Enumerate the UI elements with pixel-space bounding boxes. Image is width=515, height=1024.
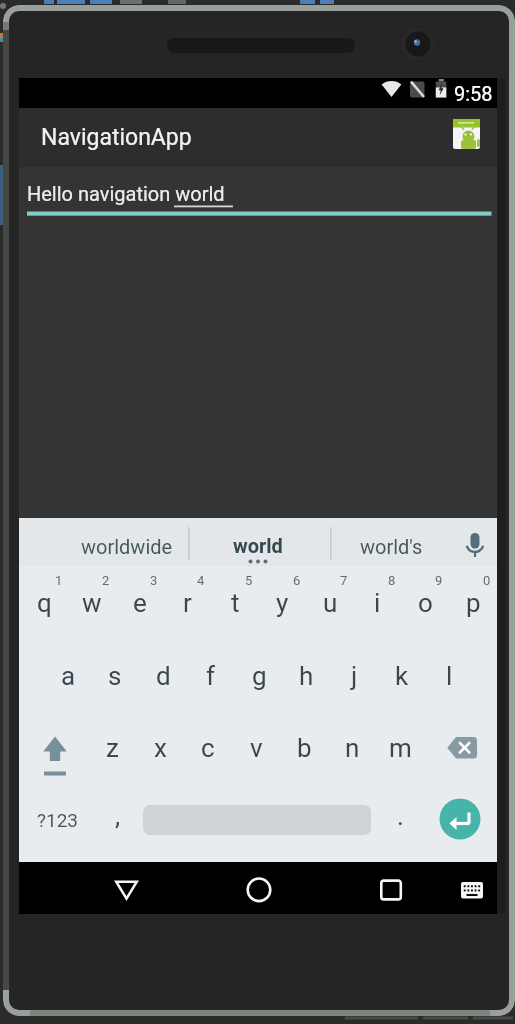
staticText: q — [37, 588, 52, 618]
staticText: z — [106, 733, 119, 763]
staticText: 4 — [197, 573, 205, 588]
staticText: e — [133, 588, 147, 618]
staticText: c — [201, 733, 215, 763]
staticText: 9 — [435, 573, 443, 588]
staticText: 2 — [102, 573, 110, 588]
staticText: s — [108, 661, 122, 691]
staticText: , — [115, 801, 121, 831]
staticText: 8 — [388, 573, 396, 588]
staticText: i — [374, 588, 381, 618]
staticText: 6 — [293, 573, 301, 588]
staticText: v — [250, 733, 263, 763]
staticText: p — [466, 588, 481, 618]
staticText: a — [61, 661, 76, 691]
staticText: world — [233, 534, 283, 557]
staticText: world's — [360, 535, 423, 558]
staticText: 7 — [340, 573, 348, 588]
staticText: n — [345, 733, 360, 763]
staticText: w — [82, 588, 102, 618]
staticText: Hello navigation world — [27, 182, 225, 205]
staticText: 0 — [483, 573, 491, 588]
staticText: g — [252, 661, 267, 691]
staticText: y — [276, 588, 289, 618]
staticText: k — [395, 661, 409, 691]
staticText: 9:58 — [454, 82, 493, 105]
staticText: m — [389, 733, 412, 763]
staticText: j — [351, 661, 358, 691]
staticText: ?123 — [37, 809, 79, 831]
staticText: 5 — [245, 573, 253, 588]
staticText: l — [446, 661, 453, 691]
staticText: b — [297, 733, 312, 763]
staticText: 1 — [55, 573, 63, 588]
staticText: f — [206, 661, 216, 691]
staticText: r — [183, 588, 192, 618]
staticText: o — [418, 588, 433, 618]
staticText: d — [156, 661, 171, 691]
staticText: u — [323, 588, 338, 618]
staticText: 3 — [150, 573, 158, 588]
staticText: . — [397, 801, 404, 831]
staticText: worldwide — [81, 535, 173, 558]
staticText: NavigationApp — [41, 124, 192, 151]
staticText: h — [299, 661, 314, 691]
staticText: t — [231, 588, 240, 618]
staticText: x — [154, 733, 167, 763]
